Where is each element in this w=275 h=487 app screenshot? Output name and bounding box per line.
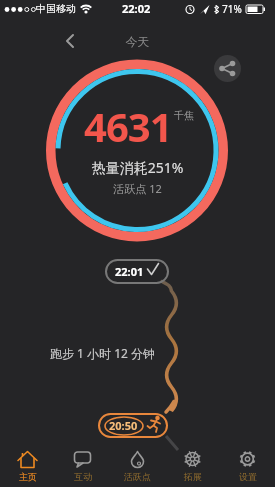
staticText: 20:50 bbox=[109, 418, 138, 433]
button[interactable] bbox=[58, 29, 82, 53]
staticText: 千焦 bbox=[174, 109, 194, 122]
button[interactable]: 20:50 bbox=[98, 413, 168, 438]
staticText: 4631 bbox=[84, 99, 172, 153]
staticText: 主页 bbox=[19, 471, 37, 482]
staticText: 活跃点 bbox=[124, 471, 151, 482]
button[interactable]: 拓展 bbox=[165, 445, 220, 487]
button[interactable]: 设置 bbox=[220, 445, 275, 487]
staticText: 跑步 1 小时 12 分钟 bbox=[50, 345, 156, 361]
button[interactable]: 互动 bbox=[55, 445, 110, 487]
staticText: 互动 bbox=[74, 471, 92, 482]
staticText: 22:01 bbox=[115, 264, 144, 279]
staticText: 中国移动 bbox=[36, 2, 76, 15]
staticText: 热量消耗251% bbox=[0, 158, 275, 177]
staticText: 22:02 bbox=[122, 1, 151, 16]
button[interactable]: 主页 bbox=[0, 445, 55, 487]
staticText: 71% bbox=[222, 2, 242, 16]
staticText: 设置 bbox=[239, 471, 257, 482]
staticText: 今天 bbox=[0, 34, 275, 49]
button[interactable] bbox=[214, 55, 241, 82]
staticText: 活跃点 12 bbox=[0, 181, 275, 196]
button[interactable]: 活跃点 bbox=[110, 445, 165, 487]
button[interactable]: 22:01 bbox=[105, 259, 169, 284]
staticText: 拓展 bbox=[184, 471, 202, 482]
